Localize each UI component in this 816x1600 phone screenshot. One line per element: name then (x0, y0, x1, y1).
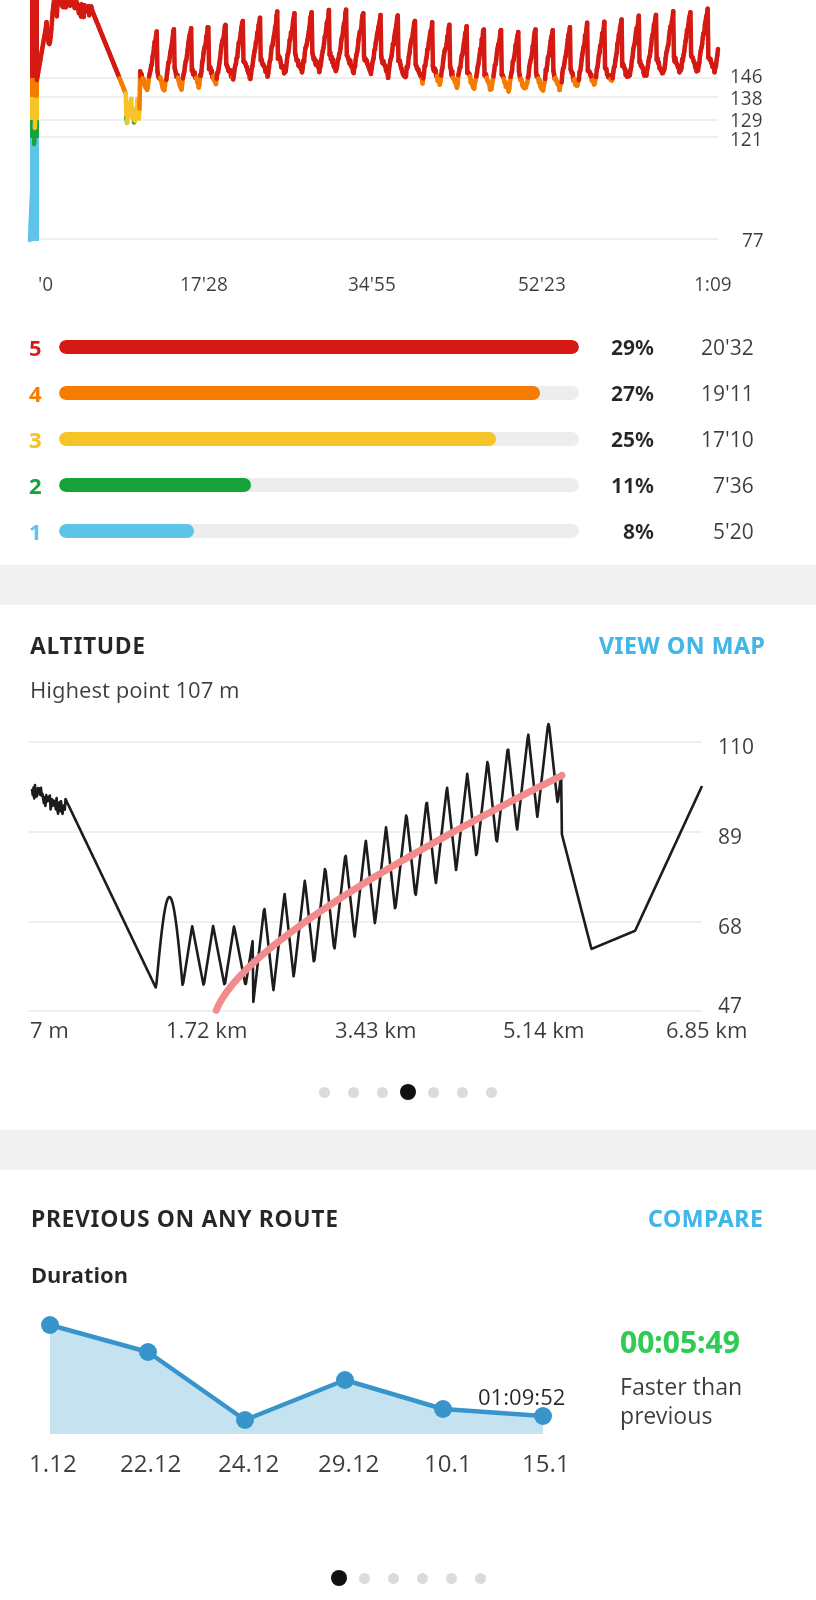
staticText: 20'32 (701, 333, 754, 362)
staticText: 17'28 (180, 271, 228, 297)
staticText: 1.72 km (166, 1014, 248, 1044)
staticText: 27% (611, 379, 654, 408)
staticText: 47 (718, 991, 743, 1020)
button[interactable]: Page 6 (457, 1087, 468, 1098)
button[interactable]: Page 2 (359, 1573, 370, 1584)
staticText: 3 (29, 424, 42, 454)
button[interactable]: Page 1 (319, 1087, 330, 1098)
staticText: 24.12 (218, 1446, 280, 1479)
button[interactable]: Page 6 (475, 1573, 486, 1584)
staticText: Faster than previous (620, 1370, 743, 1431)
button[interactable]: Page 5 (446, 1573, 457, 1584)
button[interactable]: Page 7 (486, 1087, 497, 1098)
staticText: 7 m (30, 1014, 69, 1044)
staticText: COMPARE (648, 1202, 764, 1233)
staticText: 121 (730, 126, 763, 152)
staticText: 129 (730, 107, 763, 133)
button[interactable]: VIEW ON MAP (593, 623, 772, 666)
staticText: 34'55 (348, 271, 396, 297)
staticText: 146 (730, 63, 763, 89)
button[interactable]: 4 (0, 370, 816, 416)
staticText: 00:05:49 (620, 1321, 740, 1362)
staticText: 110 (718, 732, 755, 761)
staticText: 5.14 km (503, 1014, 585, 1044)
staticText: 10.1 (424, 1446, 472, 1479)
staticText: 6.85 km (666, 1014, 748, 1044)
staticText: Highest point 107 m (30, 674, 240, 704)
staticText: 7'36 (713, 471, 754, 500)
staticText: 5'20 (713, 517, 754, 546)
staticText: 11% (611, 471, 654, 500)
staticText: 29% (611, 333, 654, 362)
staticText: 68 (718, 912, 743, 941)
staticText: 01:09:52 (478, 1381, 566, 1411)
staticText: 2 (29, 470, 42, 500)
button[interactable]: Page 4 (417, 1573, 428, 1584)
staticText: Duration (31, 1259, 129, 1289)
button[interactable]: Page 3 (388, 1573, 399, 1584)
staticText: 138 (730, 85, 763, 111)
button[interactable]: Page 1 (331, 1570, 347, 1586)
staticText: 89 (718, 822, 743, 851)
button[interactable]: Page 3 (377, 1087, 388, 1098)
staticText: 19'11 (701, 379, 754, 408)
staticText: 1.12 (29, 1446, 77, 1479)
button[interactable]: Page 2 (348, 1087, 359, 1098)
staticText: 8% (623, 517, 654, 546)
staticText: 5 (29, 332, 42, 362)
staticText: 15.1 (522, 1446, 570, 1479)
staticText: 17'10 (701, 425, 754, 454)
staticText: 77 (742, 227, 764, 253)
staticText: VIEW ON MAP (599, 629, 766, 660)
staticText: 52'23 (518, 271, 566, 297)
staticText: PREVIOUS ON ANY ROUTE (31, 1202, 339, 1233)
button[interactable]: 3 (0, 416, 816, 462)
staticText: 29.12 (318, 1446, 380, 1479)
button[interactable]: 1 (0, 508, 816, 554)
staticText: 1:09 (694, 271, 732, 297)
staticText: 25% (611, 425, 654, 454)
staticText: 22.12 (120, 1446, 182, 1479)
button[interactable]: 2 (0, 462, 816, 508)
button[interactable]: 5 (0, 324, 816, 370)
button[interactable]: Page 5 (428, 1087, 439, 1098)
staticText: '0 (38, 271, 54, 297)
button[interactable]: Page 4 (400, 1084, 416, 1100)
staticText: ALTITUDE (30, 629, 146, 660)
staticText: 1 (29, 516, 42, 546)
staticText: 3.43 km (335, 1014, 417, 1044)
button[interactable]: COMPARE (642, 1196, 770, 1239)
staticText: 4 (29, 378, 42, 408)
